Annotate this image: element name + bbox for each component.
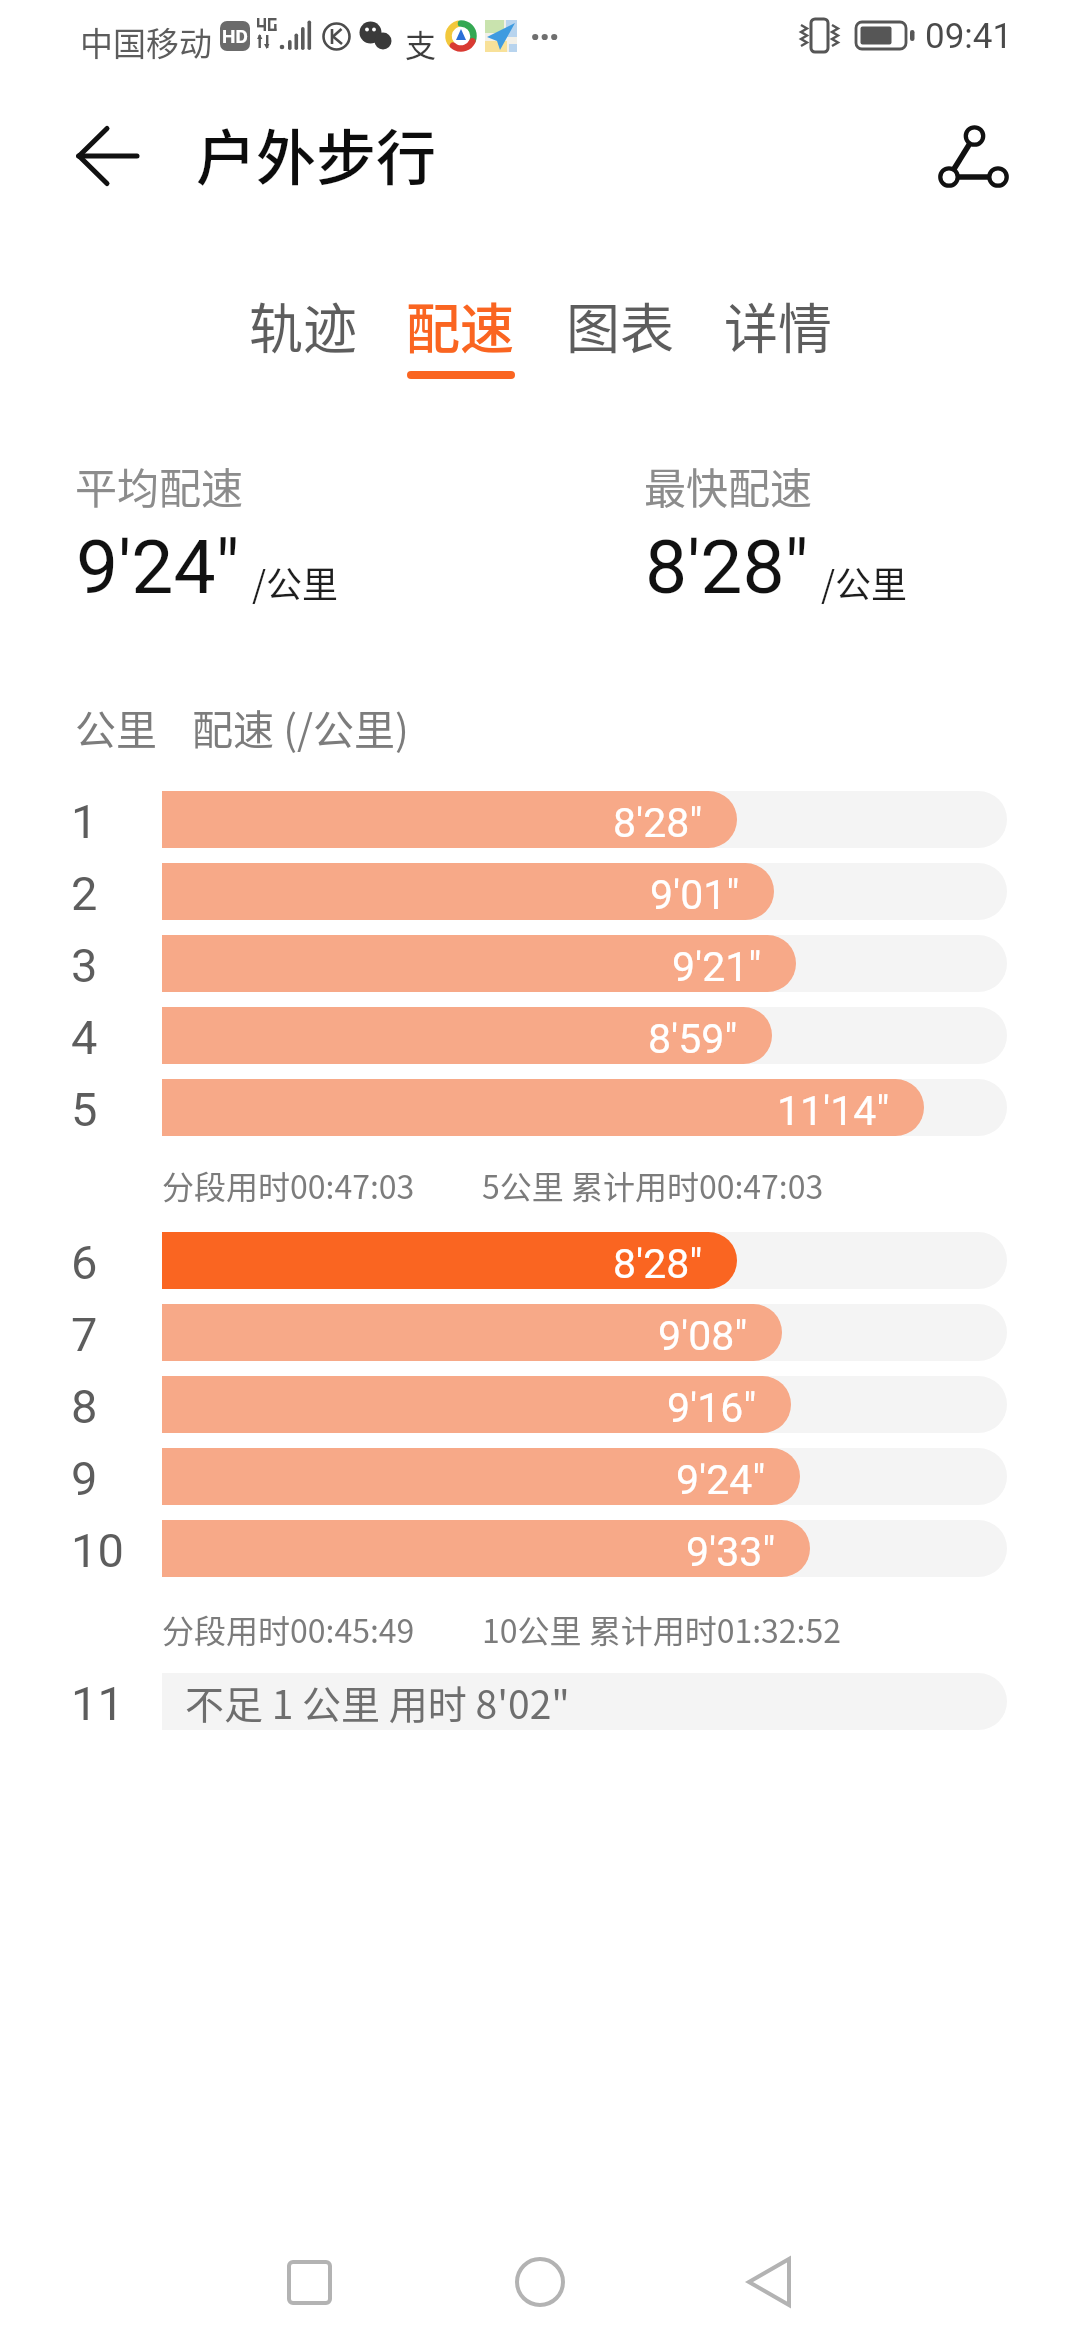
staticText: 3 (71, 938, 98, 993)
staticText: 09:41 (925, 16, 1013, 57)
staticText: 最快配速 (644, 455, 813, 516)
staticText: 11'14" (777, 1087, 890, 1135)
staticText: 2 (71, 866, 98, 921)
staticText: 轨迹 (249, 286, 357, 364)
staticText: 公里 (75, 697, 157, 756)
staticText: 9'16" (667, 1384, 757, 1432)
staticText: 9'24" (76, 523, 240, 611)
staticText: 4 (71, 1010, 98, 1065)
button[interactable]: Recents (249, 2222, 369, 2340)
staticText: 8'28" (645, 523, 809, 611)
staticText: 9'01" (650, 871, 740, 919)
staticText: 1 (71, 794, 98, 849)
staticText: 不足 1 公里 用时 8'02" (185, 1674, 570, 1730)
staticText: 支 (405, 21, 436, 66)
staticText: 9'08" (658, 1312, 748, 1360)
button[interactable]: 轨迹 (224, 286, 382, 382)
button[interactable]: 详情 (699, 286, 857, 382)
staticText: 5 (71, 1082, 98, 1137)
button[interactable]: Share (911, 104, 1011, 204)
staticText: 7 (71, 1307, 98, 1362)
staticText: 分段用时00:45:49 (162, 1606, 415, 1652)
staticText: 平均配速 (75, 455, 244, 516)
staticText: 详情 (724, 286, 832, 364)
button[interactable]: 配速 (381, 286, 539, 382)
staticText: 9'33" (686, 1528, 776, 1576)
staticText: 9 (71, 1451, 98, 1506)
button[interactable]: 图表 (541, 286, 699, 382)
staticText: 中国移动 (80, 18, 212, 66)
staticText: 8'59" (648, 1015, 738, 1063)
staticText: 10公里 累计用时01:32:52 (482, 1606, 842, 1652)
staticText: 6 (71, 1235, 98, 1290)
staticText: /公里 (252, 556, 339, 608)
staticText: 5公里 累计用时00:47:03 (482, 1162, 824, 1208)
staticText: /公里 (821, 556, 908, 608)
staticText: 8'28" (613, 1240, 703, 1288)
staticText: 8'28" (613, 799, 703, 847)
staticText: 8 (71, 1379, 98, 1434)
staticText: 配速 (/公里) (192, 697, 409, 756)
staticText: 9'24" (676, 1456, 766, 1504)
button[interactable]: Back (709, 2222, 829, 2340)
staticText: 分段用时00:47:03 (162, 1162, 415, 1208)
staticText: 9'21" (672, 943, 762, 991)
staticText: 配速 (406, 286, 514, 364)
staticText: 11 (71, 1676, 124, 1731)
staticText: 户外步行 (196, 110, 436, 197)
staticText: HD (222, 25, 248, 47)
staticText: 图表 (566, 286, 674, 364)
button[interactable]: Home (480, 2222, 600, 2340)
staticText: 10 (71, 1523, 124, 1578)
button[interactable]: Back (60, 108, 156, 204)
